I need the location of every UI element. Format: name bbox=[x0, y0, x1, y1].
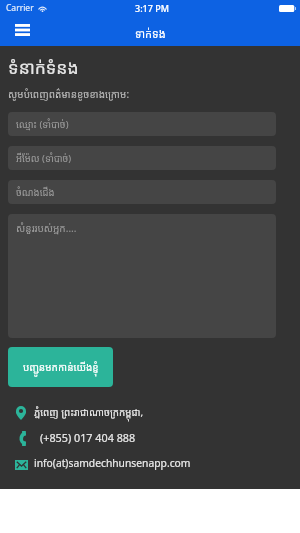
staticText: បញ្ជូនមកកាន់យើងខ្ញុំ bbox=[23, 360, 99, 374]
staticText: ទាក់ទង bbox=[135, 26, 166, 41]
staticText: info(at)samdechhunsenapp.com bbox=[34, 456, 191, 470]
button[interactable]: ឈ្មោះ (ទាំបាច់) bbox=[8, 112, 276, 136]
button[interactable]: អីម៉ែល (ទាំបាច់) bbox=[8, 146, 276, 170]
staticText: សំនួររបស់អ្នក.... bbox=[16, 221, 77, 235]
button[interactable]: Open navigation menu bbox=[13, 23, 31, 37]
staticText: ទំនាក់ទំនង bbox=[8, 55, 79, 79]
staticText: ភ្នំពេញ ព្រះរាជាណាចក្រកម្ពុជា, bbox=[34, 406, 144, 419]
button[interactable]: ចំណងជើង bbox=[8, 180, 276, 204]
button[interactable]: ភ្នំពេញ ព្រះរាជាណាចក្រកម្ពុជា, bbox=[8, 400, 276, 425]
button[interactable]: info(at)samdechhunsenapp.com bbox=[8, 450, 276, 475]
staticText: Carrier bbox=[6, 2, 34, 14]
staticText: អីម៉ែល (ទាំបាច់) bbox=[16, 152, 72, 165]
staticText: (+855) 017 404 888 bbox=[40, 430, 136, 445]
button[interactable]: (+855) 017 404 888 bbox=[8, 425, 276, 450]
button[interactable]: សំនួររបស់អ្នក.... bbox=[8, 214, 276, 338]
staticText: សូមបំពេញពត៌មានខូចខាងក្រោម: bbox=[8, 87, 130, 101]
staticText: ចំណងជើង bbox=[16, 186, 55, 199]
button[interactable]: បញ្ជូនមកកាន់យើងខ្ញុំ bbox=[8, 347, 113, 387]
staticText: 3:17 PM bbox=[135, 2, 169, 14]
staticText: ឈ្មោះ (ទាំបាច់) bbox=[16, 118, 69, 131]
